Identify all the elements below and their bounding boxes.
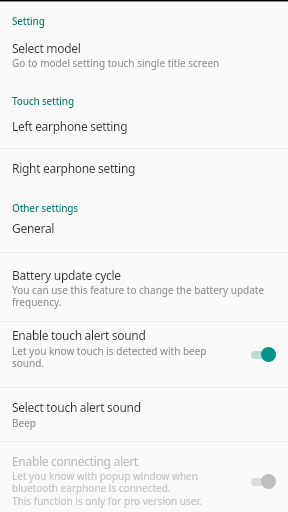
button[interactable]: Select model: [0, 27, 288, 78]
staticText: Let you know touch is detected with beep…: [12, 344, 240, 370]
staticText: Beep: [12, 416, 276, 430]
staticText: Touch setting: [12, 94, 74, 108]
staticText: Enable connecting alert: [12, 453, 240, 469]
staticText: Battery update cycle: [12, 267, 276, 283]
button[interactable]: Select touch alert sound: [0, 388, 288, 441]
staticText: General: [12, 220, 276, 236]
staticText: Setting: [12, 14, 45, 28]
staticText: Let you know with popup window when blue…: [12, 469, 240, 508]
button[interactable]: Left earphone setting: [0, 108, 288, 148]
button[interactable]: Switch on: [251, 347, 276, 362]
staticText: Select model: [12, 40, 276, 56]
staticText: Enable touch alert sound: [12, 327, 240, 343]
staticText: Other settings: [12, 201, 78, 215]
button[interactable]: Battery update cycle: [0, 253, 288, 321]
button[interactable]: Enable connecting alert: [0, 442, 288, 512]
button[interactable]: Right earphone setting: [0, 149, 288, 189]
staticText: Right earphone setting: [12, 160, 276, 176]
staticText: Left earphone setting: [12, 118, 276, 134]
button[interactable]: Enable touch alert sound: [0, 322, 288, 387]
staticText: Select touch alert sound: [12, 399, 276, 415]
button[interactable]: General: [0, 214, 288, 250]
button[interactable]: Switch off: [251, 474, 276, 489]
staticText: You can use this feature to change the b…: [12, 283, 276, 309]
staticText: Go to model setting touch single title s…: [12, 56, 276, 70]
